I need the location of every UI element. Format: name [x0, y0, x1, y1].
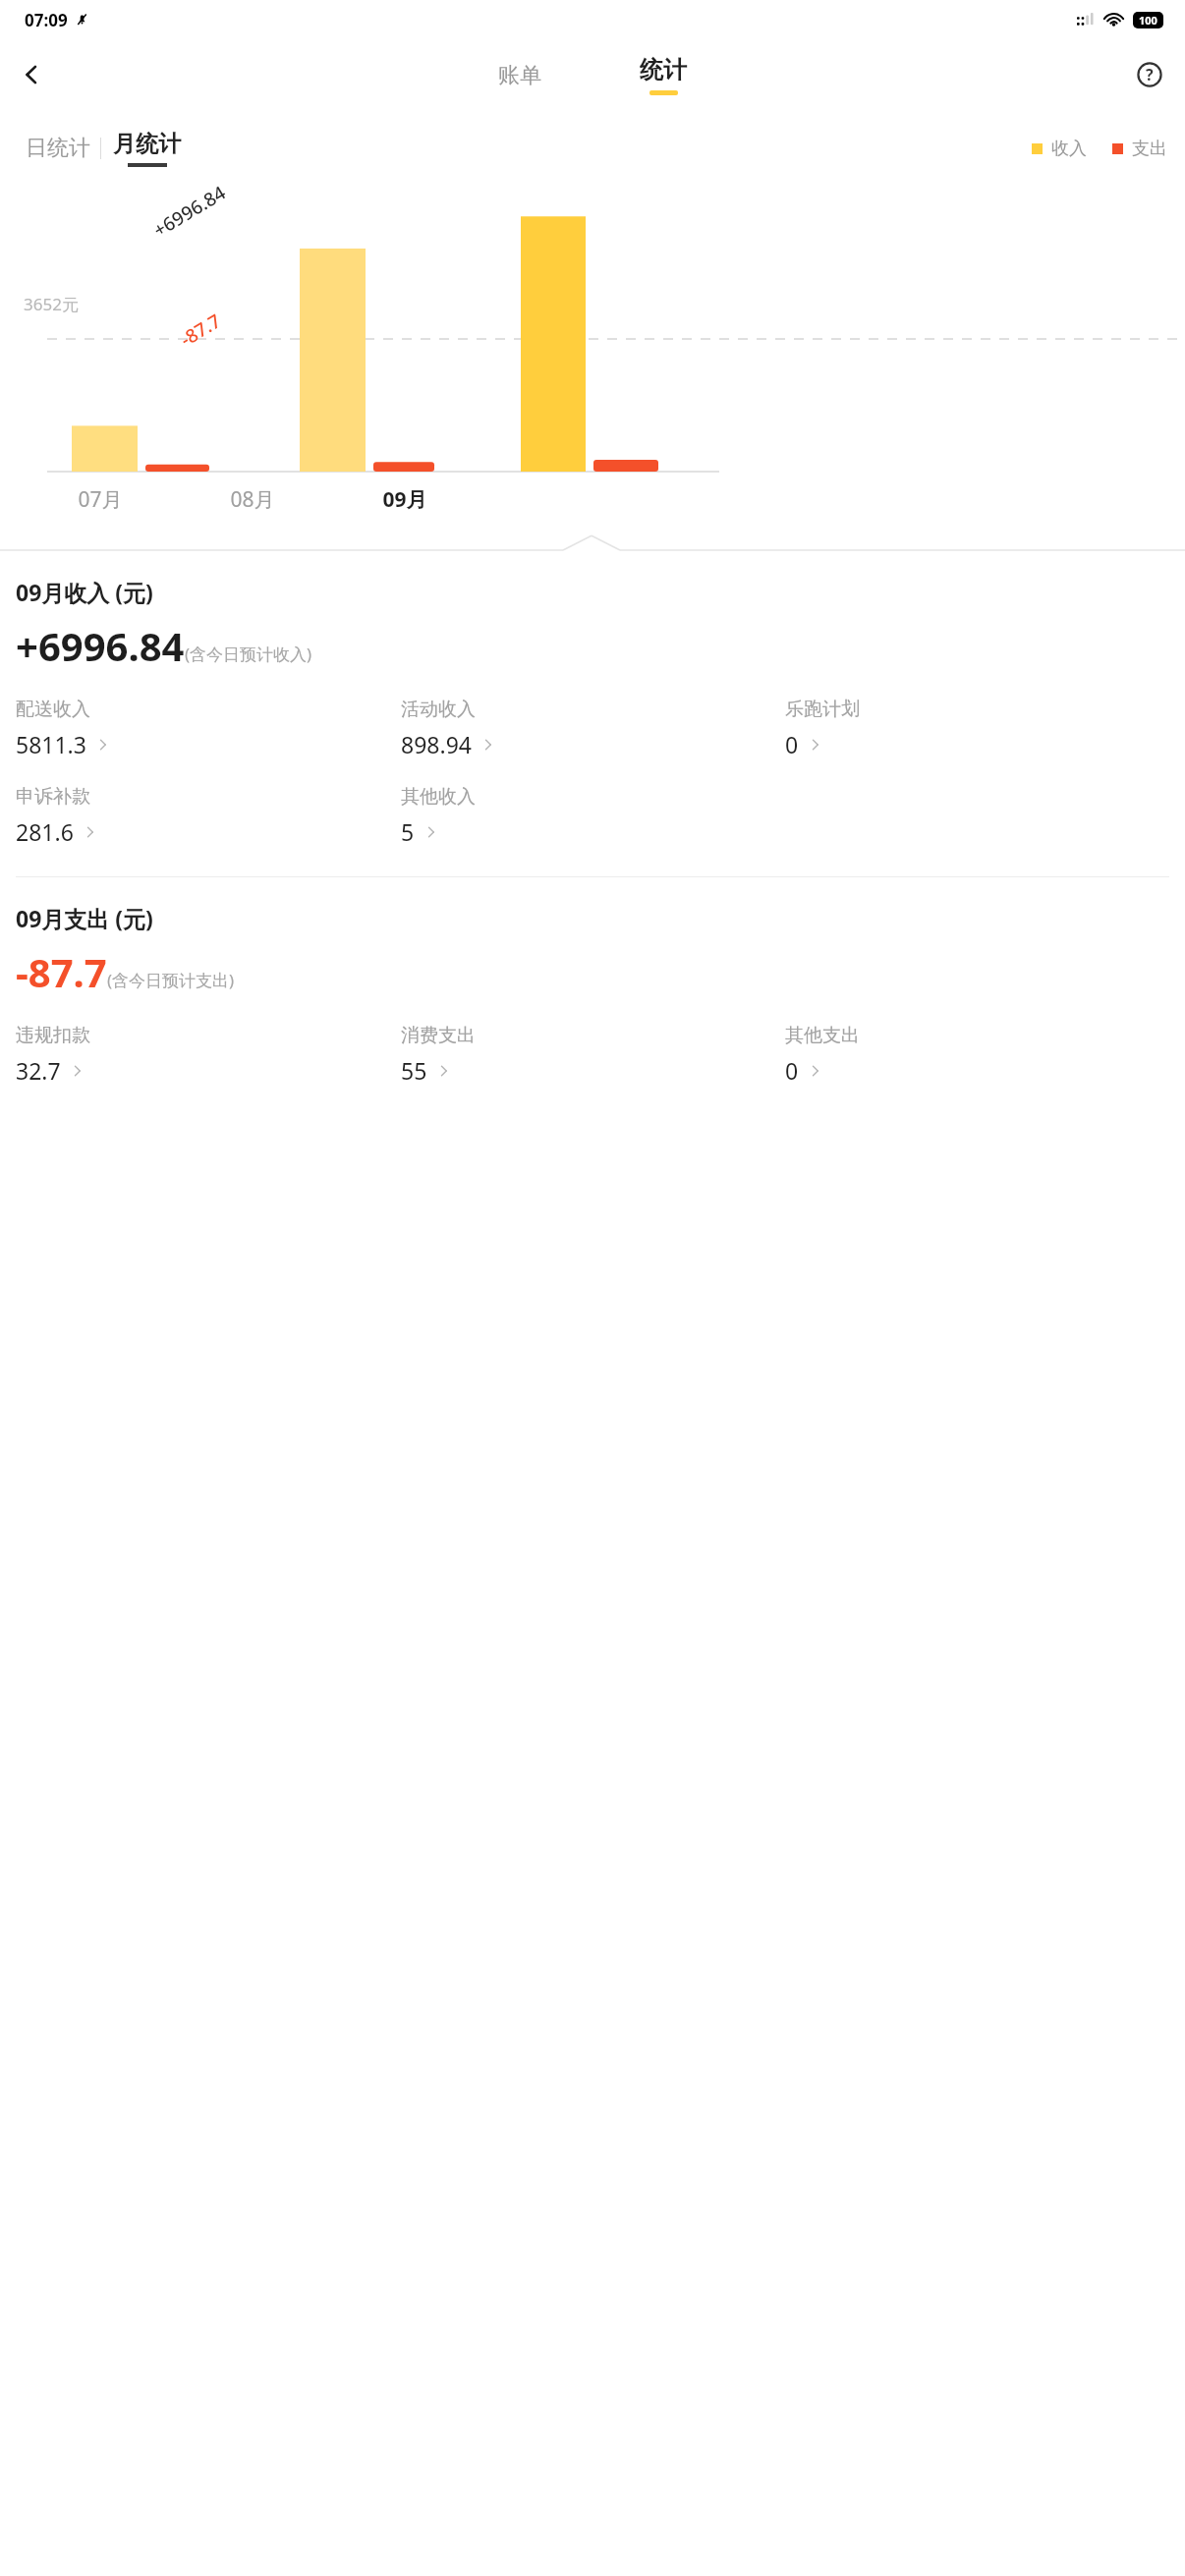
button[interactable]: 08月: [176, 485, 328, 514]
staticText: 支出: [1132, 138, 1167, 160]
staticText: 55: [401, 1055, 427, 1086]
staticText: 0: [785, 729, 799, 759]
button[interactable]: 活动收入: [401, 698, 503, 761]
button[interactable]: Back: [8, 51, 55, 98]
staticText: 09月收入 (元): [16, 577, 153, 607]
button[interactable]: 07月: [24, 485, 176, 514]
staticText: -87.7: [175, 308, 226, 352]
staticText: 统计: [640, 55, 687, 84]
button[interactable]: 09月: [328, 485, 480, 514]
staticText: 09月支出 (元): [16, 903, 153, 933]
staticText: 5811.3: [16, 729, 86, 759]
staticText: 32.7: [16, 1055, 61, 1086]
button[interactable]: 日统计: [16, 127, 100, 170]
staticText: ?: [1146, 64, 1154, 85]
staticText: +6996.84: [149, 179, 231, 243]
staticText: 898.94: [401, 729, 472, 759]
button[interactable]: 月统计: [101, 130, 189, 167]
staticText: 乐跑计划: [785, 698, 860, 721]
button[interactable]: 统计: [626, 53, 701, 97]
staticText: 08月: [230, 485, 275, 514]
staticText: 申诉补款: [16, 785, 90, 809]
staticText: 3652元: [24, 293, 79, 315]
staticText: 活动收入: [401, 698, 476, 721]
button[interactable]: 其他支出: [785, 1024, 868, 1088]
button[interactable]: 其他收入: [401, 785, 483, 849]
staticText: 账单: [498, 62, 541, 89]
staticText: 收入: [1051, 138, 1087, 160]
staticText: 配送收入: [16, 698, 90, 721]
staticText: 其他支出: [785, 1024, 860, 1047]
button[interactable]: Help: [1126, 51, 1173, 98]
button[interactable]: 违规扣款: [16, 1024, 98, 1088]
button[interactable]: 消费支出: [401, 1024, 483, 1088]
staticText: 100: [1139, 13, 1157, 28]
button[interactable]: 申诉补款: [16, 785, 105, 849]
button[interactable]: 账单: [484, 56, 555, 95]
staticText: -87.7: [16, 945, 107, 998]
staticText: +6996.84: [16, 619, 185, 672]
button[interactable]: 配送收入: [16, 698, 118, 761]
staticText: 0: [785, 1055, 799, 1086]
staticText: (含今日预计支出): [107, 969, 235, 991]
staticText: 281.6: [16, 816, 74, 847]
staticText: 09月: [382, 485, 427, 514]
staticText: 07:09: [25, 9, 68, 31]
staticText: 违规扣款: [16, 1024, 90, 1047]
button[interactable]: 乐跑计划: [785, 698, 868, 761]
staticText: 月统计: [113, 130, 181, 158]
staticText: (含今日预计收入): [185, 643, 312, 665]
staticText: 07月: [78, 485, 123, 514]
staticText: 5: [401, 816, 415, 847]
staticText: 日统计: [26, 135, 90, 162]
staticText: 其他收入: [401, 785, 476, 809]
staticText: 消费支出: [401, 1024, 476, 1047]
